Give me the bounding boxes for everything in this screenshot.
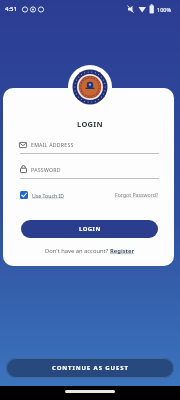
staticText: EMAIL ADDRESS [31,141,74,148]
staticText: LOGIN [0,119,180,129]
staticText: PASSWORD [31,166,61,173]
staticText: Don't have an account? [45,247,110,255]
staticText: Use Touch ID [32,192,65,199]
button[interactable]: Forgot Password? [115,191,159,198]
button[interactable] [20,139,159,154]
button[interactable]: LOGIN [21,220,158,238]
button[interactable]: CONTINUE AS GUEST [6,358,174,378]
button[interactable] [20,163,159,179]
staticText: CONTINUE AS GUEST [52,364,129,372]
button[interactable]: Register [110,247,135,255]
staticText: 100% [157,6,172,13]
button[interactable]: Use Touch ID [20,191,65,199]
staticText: 4:51 [5,5,17,13]
staticText: LOGIN [79,225,101,233]
